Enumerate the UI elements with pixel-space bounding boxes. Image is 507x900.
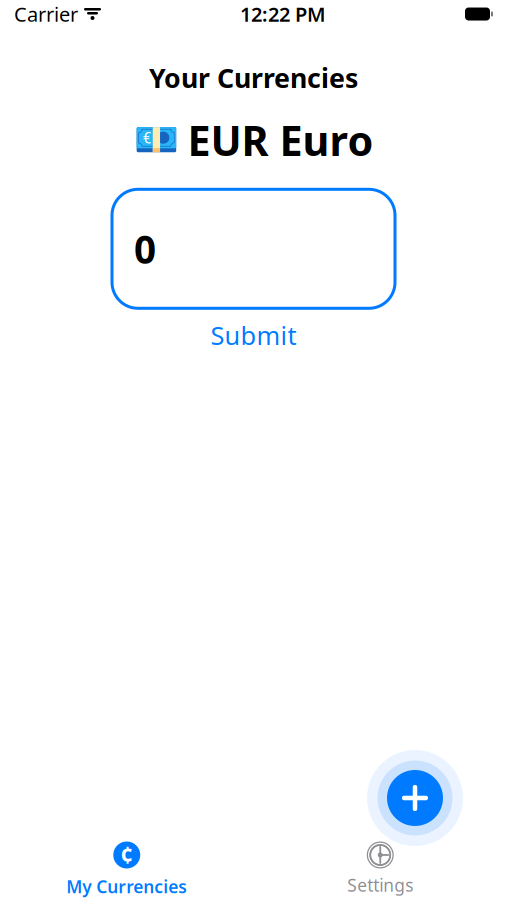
staticText: 0 — [134, 223, 156, 274]
staticText: Your Currencies — [149, 60, 358, 95]
button[interactable]: Submit — [194, 314, 312, 356]
staticText: Settings — [347, 873, 413, 896]
button[interactable]: ¢ — [0, 835, 253, 900]
staticText: 💶 — [133, 119, 178, 160]
staticText: 12:22 PM — [240, 1, 326, 27]
staticText: Submit — [210, 318, 296, 352]
staticText: Carrier — [14, 1, 78, 27]
staticText: ¢ — [120, 840, 133, 870]
button[interactable]: Settings — [253, 836, 507, 900]
staticText: My Currencies — [66, 875, 187, 898]
button[interactable]: Add currency — [365, 748, 465, 848]
staticText: EUR Euro — [187, 112, 373, 167]
